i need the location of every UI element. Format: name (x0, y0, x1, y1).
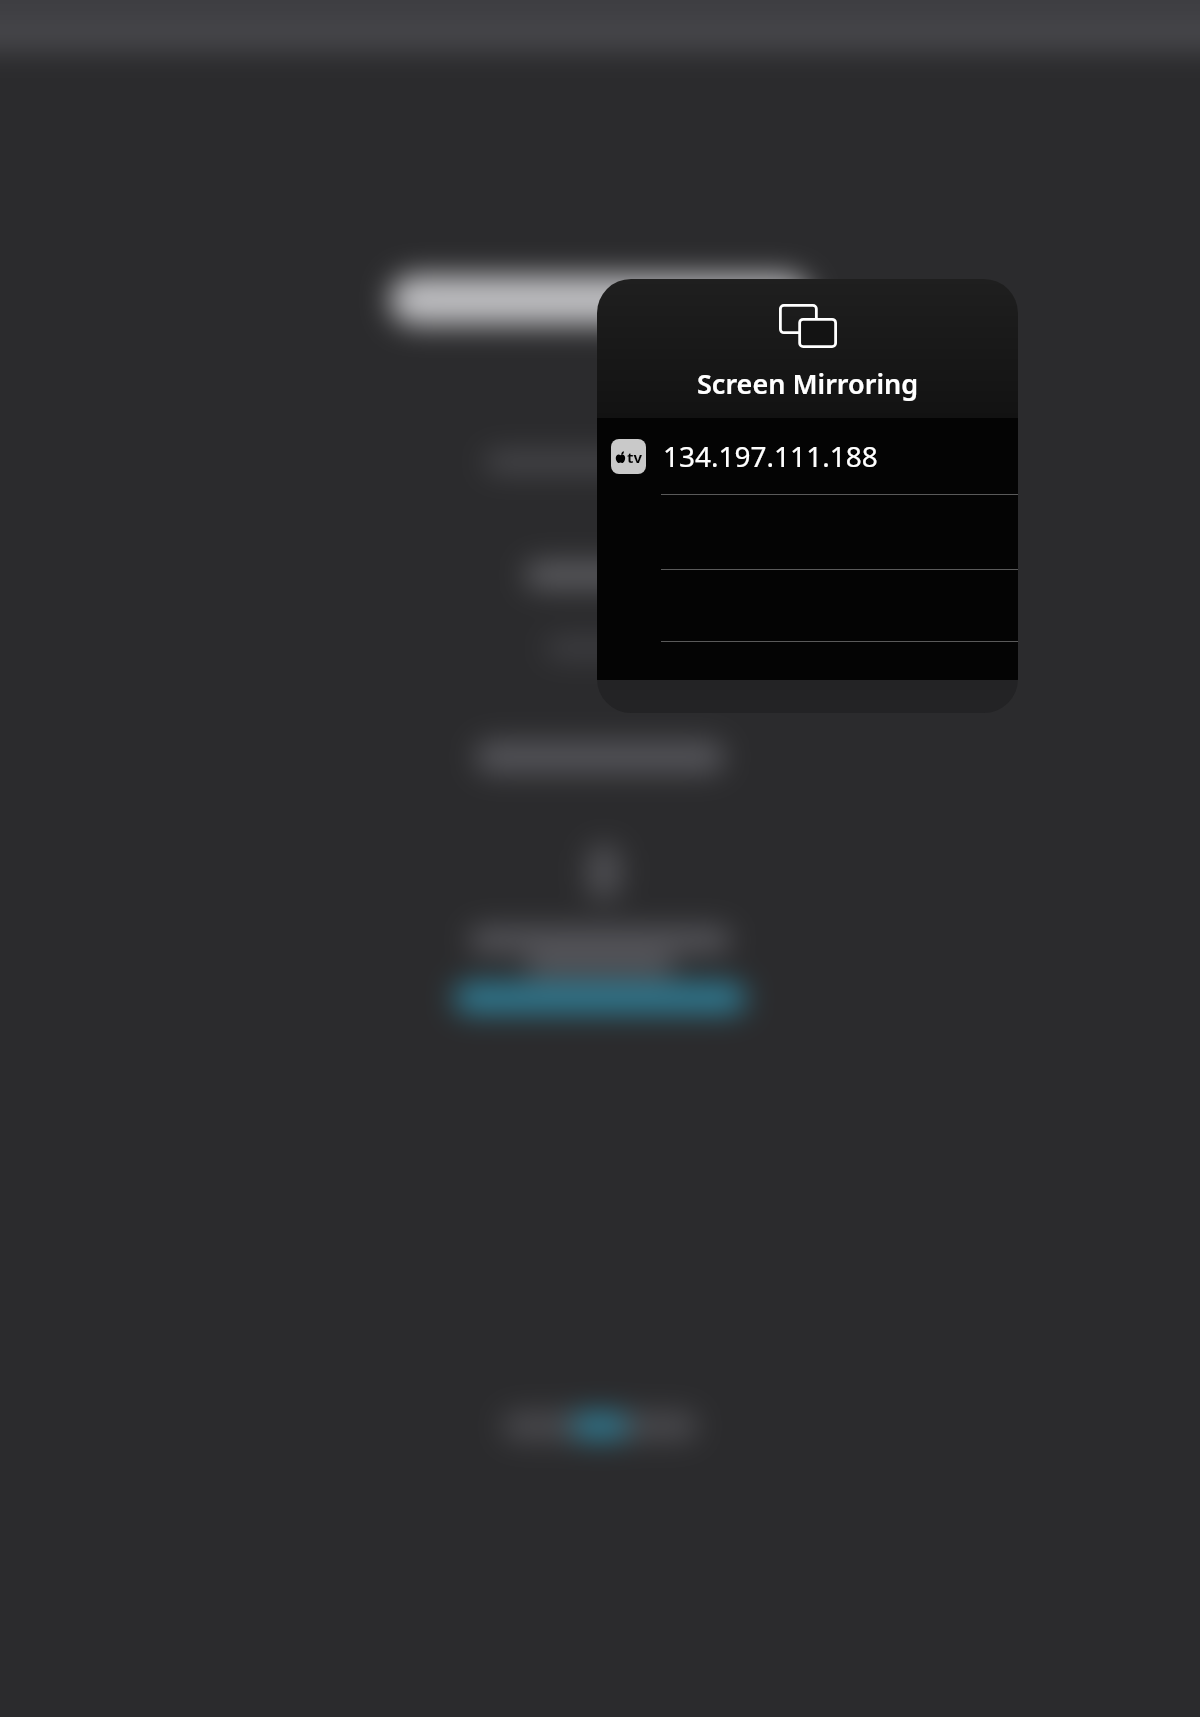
button[interactable]: tv (597, 418, 1018, 494)
staticText: 134.197.111.188 (663, 437, 878, 475)
other: Screen Mirroring (779, 304, 837, 348)
staticText: Screen Mirroring (697, 365, 919, 402)
staticText: tv (627, 447, 643, 467)
